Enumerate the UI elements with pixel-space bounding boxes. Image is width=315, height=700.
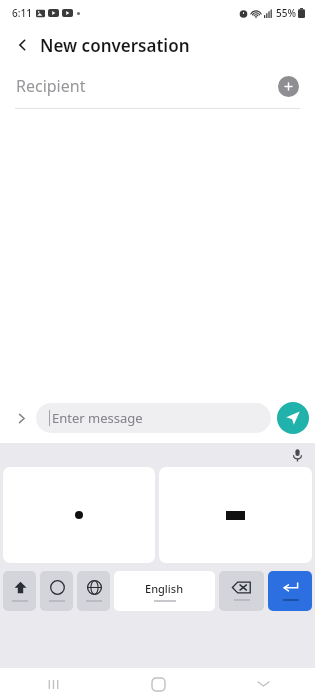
button[interactable]: Back [8,30,38,60]
button[interactable]: Add recipient [278,76,299,97]
staticText: 55% [276,6,296,20]
button[interactable]: Enter [268,571,312,611]
staticText: Recipient [16,75,86,97]
button[interactable] [3,467,155,563]
button[interactable]: Hide keyboard [246,668,280,700]
button[interactable]: Home [141,668,175,700]
button[interactable]: English [114,571,215,611]
button[interactable]: Shift [3,571,36,611]
button[interactable]: Backspace [219,571,264,611]
staticText: New conversation [40,34,190,57]
button[interactable]: Enter message [36,403,271,433]
button[interactable]: Send [277,402,309,434]
button[interactable] [159,467,312,563]
staticText: English [145,581,184,596]
button[interactable]: Recents [36,668,70,700]
button[interactable]: Voice input [287,445,307,465]
button[interactable]: Symbols [40,571,73,611]
button[interactable]: Expand [6,403,36,433]
staticText: Enter message [52,409,143,427]
staticText: 6:11 [12,6,32,20]
button[interactable]: Language [77,571,110,611]
